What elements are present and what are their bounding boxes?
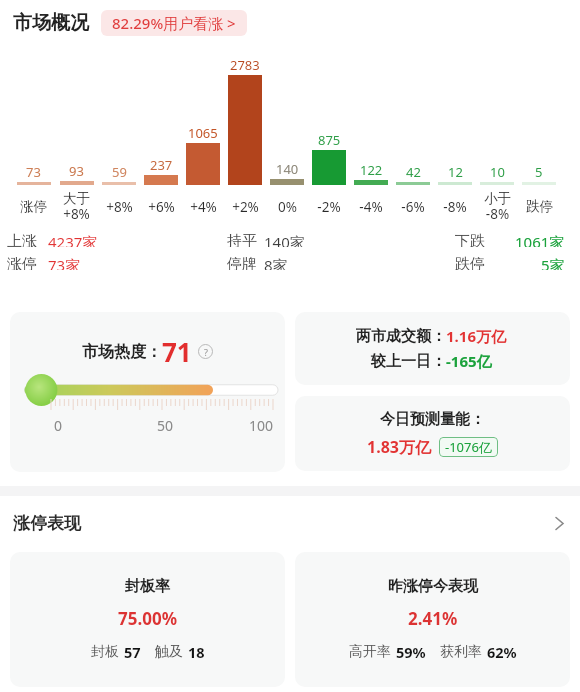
- staticText: 封板: [91, 643, 119, 661]
- staticText: 两市成交额：: [356, 327, 446, 346]
- staticText: 跌停: [526, 198, 553, 215]
- staticText: 10: [490, 163, 505, 181]
- staticText: 93: [69, 162, 84, 180]
- staticText: 12: [448, 163, 463, 181]
- staticText: 市场概况: [13, 11, 89, 35]
- staticText: -6%: [401, 198, 425, 216]
- staticText: 71: [162, 334, 192, 369]
- staticText: 涨停: [20, 198, 47, 215]
- staticText: 停牌: [227, 255, 257, 270]
- staticText: 2783: [230, 56, 260, 74]
- staticText: -8%: [443, 198, 467, 216]
- staticText: 持平: [227, 232, 257, 247]
- staticText: 高开率: [349, 643, 391, 661]
- button[interactable]: 两市成交额：: [295, 312, 570, 385]
- button[interactable]: 涨停表现: [13, 513, 564, 534]
- staticText: 2.41%: [408, 607, 458, 630]
- staticText: 42: [406, 163, 421, 181]
- staticText: 小于 -8%: [484, 190, 511, 223]
- button[interactable]: 封板率: [10, 552, 285, 687]
- staticText: 市场热度：: [82, 342, 162, 362]
- staticText: 73家: [48, 255, 81, 270]
- staticText: 封板率: [125, 577, 170, 596]
- staticText: 上涨: [7, 232, 37, 247]
- staticText: 237: [150, 156, 173, 174]
- staticText: 100: [249, 416, 274, 435]
- staticText: +8%: [106, 198, 133, 216]
- staticText: 下跌: [455, 232, 485, 247]
- staticText: 140家: [264, 232, 305, 247]
- staticText: 75.00%: [118, 607, 178, 630]
- staticText: ?: [204, 346, 208, 358]
- staticText: 大于 +8%: [63, 190, 90, 223]
- staticText: 62%: [487, 642, 517, 662]
- staticText: 875: [318, 131, 341, 149]
- staticText: 涨停表现: [13, 513, 81, 534]
- staticText: 今日预测量能：: [380, 410, 485, 429]
- staticText: 1.83万亿: [367, 436, 431, 458]
- staticText: 140: [276, 160, 299, 178]
- staticText: -1076亿: [445, 438, 492, 456]
- staticText: -2%: [317, 198, 341, 216]
- staticText: +6%: [148, 198, 175, 216]
- staticText: 18: [188, 642, 205, 662]
- staticText: 触及: [155, 643, 183, 661]
- staticText: 57: [124, 642, 141, 662]
- staticText: 1065: [188, 124, 218, 142]
- button[interactable]: 今日预测量能：: [295, 396, 570, 471]
- staticText: 涨停: [7, 255, 37, 270]
- button[interactable]: 82.29%用户看涨 >: [101, 10, 247, 36]
- staticText: +4%: [190, 198, 217, 216]
- staticText: 122: [360, 161, 383, 179]
- staticText: 0: [54, 416, 63, 435]
- staticText: 5家: [541, 255, 565, 270]
- staticText: 0%: [278, 198, 297, 216]
- staticText: 73: [26, 163, 41, 181]
- staticText: 8家: [264, 255, 288, 270]
- staticText: 82.29%用户看涨 >: [112, 13, 236, 33]
- staticText: 59: [112, 163, 127, 181]
- staticText: 1061家: [515, 232, 565, 247]
- staticText: 昨涨停今表现: [388, 577, 478, 596]
- staticText: -4%: [359, 198, 383, 216]
- staticText: 59%: [396, 642, 426, 662]
- staticText: 4237家: [48, 232, 98, 247]
- staticText: 5: [535, 163, 543, 181]
- staticText: 较上一日：: [371, 352, 446, 371]
- staticText: 1.16万亿: [446, 326, 506, 346]
- staticText: +2%: [232, 198, 259, 216]
- button[interactable]: 昨涨停今表现: [295, 552, 570, 687]
- staticText: 50: [157, 416, 174, 435]
- button[interactable]: 市场热度：: [10, 312, 285, 472]
- staticText: -165亿: [446, 351, 492, 371]
- staticText: 获利率: [440, 643, 482, 661]
- staticText: 跌停: [455, 255, 485, 270]
